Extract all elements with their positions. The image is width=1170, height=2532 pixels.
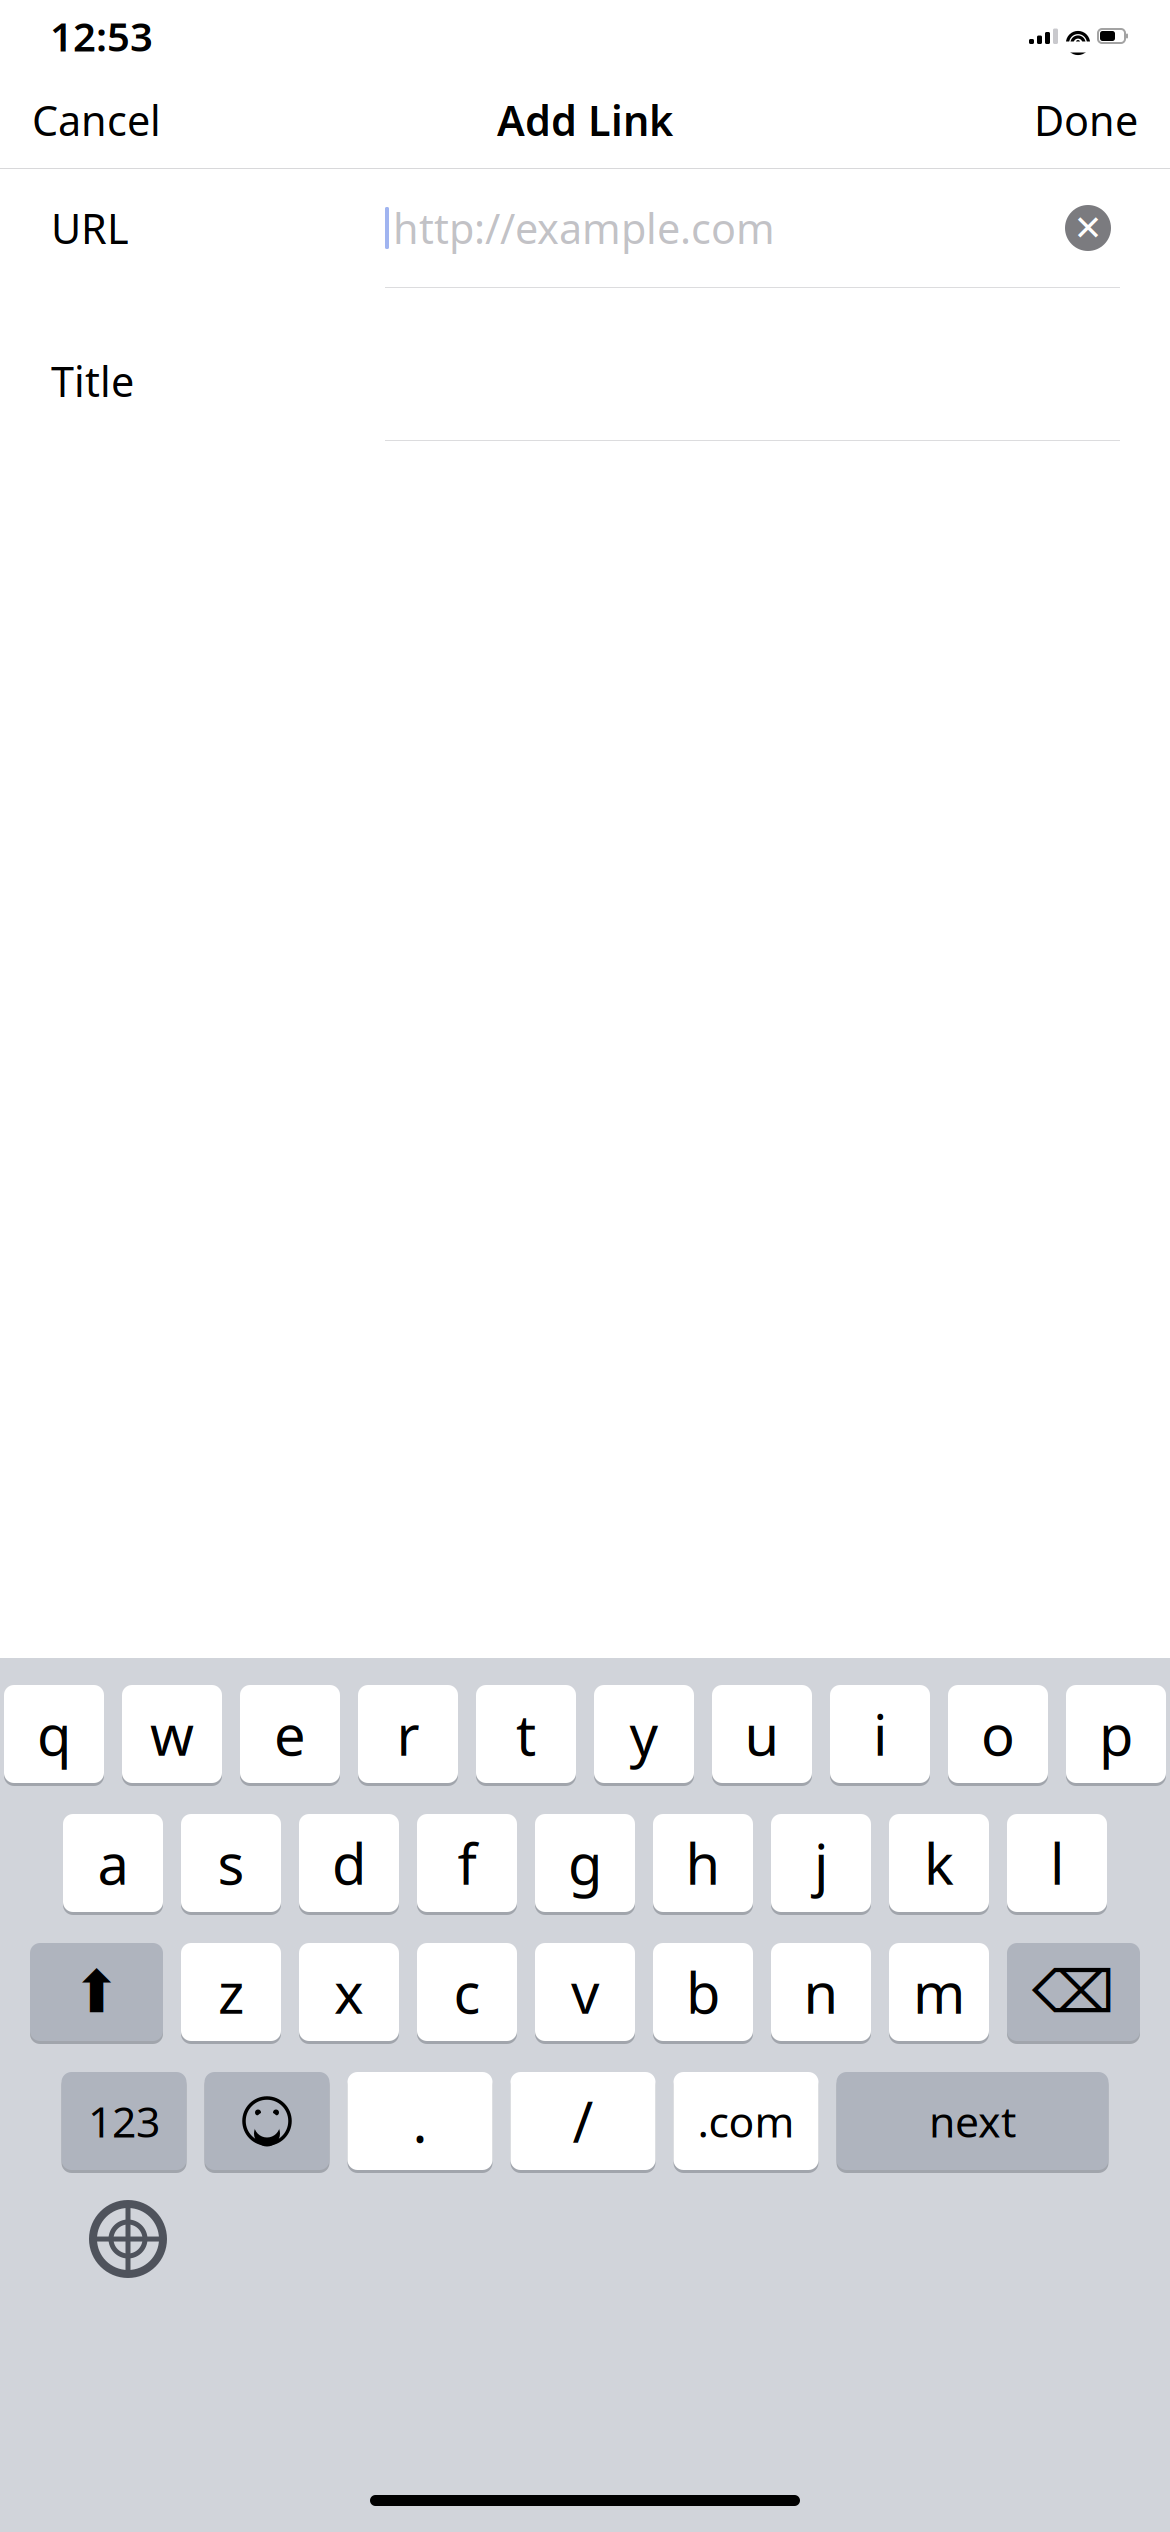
button[interactable]: Delete bbox=[1007, 1940, 1140, 2044]
button[interactable]: Next keyboard bbox=[68, 2191, 188, 2287]
button[interactable]: Shift bbox=[30, 1940, 163, 2044]
button[interactable]: j bbox=[771, 1811, 871, 1915]
staticText: s bbox=[217, 1826, 244, 1900]
staticText: y bbox=[629, 1697, 658, 1771]
button[interactable]: t bbox=[476, 1682, 576, 1786]
button[interactable]: / bbox=[510, 2069, 655, 2173]
button[interactable]: p bbox=[1066, 1682, 1166, 1786]
button[interactable]: c bbox=[417, 1940, 517, 2044]
button[interactable]: next bbox=[836, 2069, 1108, 2173]
staticText: next bbox=[929, 2093, 1016, 2149]
staticText: ✕ bbox=[1073, 208, 1102, 248]
staticText: ⌫ bbox=[1032, 1959, 1115, 2025]
staticText: p bbox=[1099, 1697, 1133, 1771]
staticText: k bbox=[924, 1826, 954, 1900]
staticText: i bbox=[873, 1697, 887, 1771]
button[interactable]: i bbox=[830, 1682, 930, 1786]
staticText: ⬆ bbox=[72, 1959, 121, 2025]
button[interactable]: z bbox=[181, 1940, 281, 2044]
staticText: / bbox=[572, 2084, 593, 2158]
staticText: x bbox=[334, 1955, 364, 2029]
staticText: . bbox=[412, 2084, 427, 2158]
staticText: m bbox=[913, 1955, 965, 2029]
staticText: f bbox=[457, 1826, 476, 1900]
button[interactable]: e bbox=[240, 1682, 340, 1786]
staticText: r bbox=[396, 1697, 419, 1771]
button[interactable]: w bbox=[122, 1682, 222, 1786]
button[interactable]: f bbox=[417, 1811, 517, 1915]
staticText: Add Link bbox=[497, 93, 673, 147]
button[interactable]: . bbox=[347, 2069, 492, 2173]
staticText: c bbox=[453, 1955, 480, 2029]
staticText: Cancel bbox=[32, 93, 161, 147]
staticText: j bbox=[814, 1826, 828, 1900]
button[interactable]: o bbox=[948, 1682, 1048, 1786]
button[interactable]: 123 bbox=[61, 2069, 186, 2173]
button[interactable]: h bbox=[653, 1811, 753, 1915]
staticText: Done bbox=[1034, 93, 1138, 147]
button[interactable]: k bbox=[889, 1811, 989, 1915]
staticText: 123 bbox=[88, 2093, 160, 2149]
staticText: n bbox=[803, 1955, 838, 2029]
staticText: h bbox=[685, 1826, 720, 1900]
staticText: v bbox=[571, 1955, 599, 2029]
button[interactable]: Done bbox=[1012, 79, 1160, 161]
staticText: http://example.com bbox=[393, 201, 775, 255]
staticText: e bbox=[274, 1697, 306, 1771]
button[interactable]: Emoji bbox=[204, 2069, 329, 2173]
staticText: g bbox=[568, 1826, 602, 1900]
button[interactable]: x bbox=[299, 1940, 399, 2044]
button[interactable]: b bbox=[653, 1940, 753, 2044]
staticText: 12:53 bbox=[50, 9, 153, 62]
staticText: d bbox=[332, 1826, 366, 1900]
button[interactable]: m bbox=[889, 1940, 989, 2044]
staticText: a bbox=[97, 1826, 128, 1900]
staticText: q bbox=[37, 1697, 71, 1771]
button[interactable]: u bbox=[712, 1682, 812, 1786]
staticText: z bbox=[218, 1955, 244, 2029]
button[interactable]: g bbox=[535, 1811, 635, 1915]
button[interactable]: s bbox=[181, 1811, 281, 1915]
staticText: o bbox=[981, 1697, 1015, 1771]
button[interactable]: v bbox=[535, 1940, 635, 2044]
staticText: u bbox=[744, 1697, 779, 1771]
staticText: URL bbox=[51, 201, 129, 255]
button[interactable]: l bbox=[1007, 1811, 1107, 1915]
staticText: b bbox=[686, 1955, 720, 2029]
button[interactable]: Clear text bbox=[1056, 196, 1120, 260]
staticText: t bbox=[516, 1697, 536, 1771]
button[interactable]: y bbox=[594, 1682, 694, 1786]
button[interactable]: n bbox=[771, 1940, 871, 2044]
button[interactable]: a bbox=[63, 1811, 163, 1915]
staticText: Title bbox=[51, 354, 134, 408]
staticText: l bbox=[1050, 1826, 1064, 1900]
button[interactable]: q bbox=[4, 1682, 104, 1786]
button[interactable]: d bbox=[299, 1811, 399, 1915]
button[interactable]: .com bbox=[673, 2069, 818, 2173]
staticText: w bbox=[150, 1697, 194, 1771]
staticText: .com bbox=[697, 2093, 794, 2149]
button[interactable]: Cancel bbox=[10, 79, 183, 161]
button[interactable]: r bbox=[358, 1682, 458, 1786]
